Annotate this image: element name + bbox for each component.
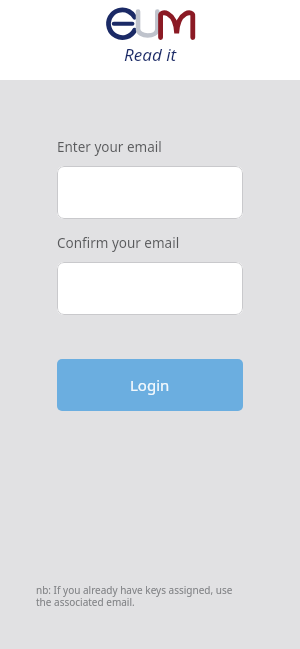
staticText: Login: [130, 375, 170, 395]
button[interactable]: Login: [57, 359, 243, 411]
staticText: Read it: [124, 43, 177, 66]
button[interactable]: Email input: [57, 262, 243, 315]
staticText: nb: If you already have keys assigned, u…: [36, 583, 242, 609]
staticText: Confirm your email: [57, 234, 180, 252]
button[interactable]: Email input: [57, 166, 243, 219]
staticText: Enter your email: [57, 138, 162, 156]
other: EUM logo: [104, 4, 196, 46]
